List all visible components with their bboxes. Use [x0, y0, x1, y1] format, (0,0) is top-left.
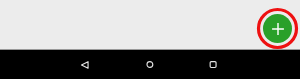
button[interactable]: Back [73, 53, 97, 77]
button[interactable]: Home [138, 53, 162, 77]
button[interactable]: Recent apps [201, 53, 225, 77]
button[interactable]: Add [263, 14, 292, 43]
